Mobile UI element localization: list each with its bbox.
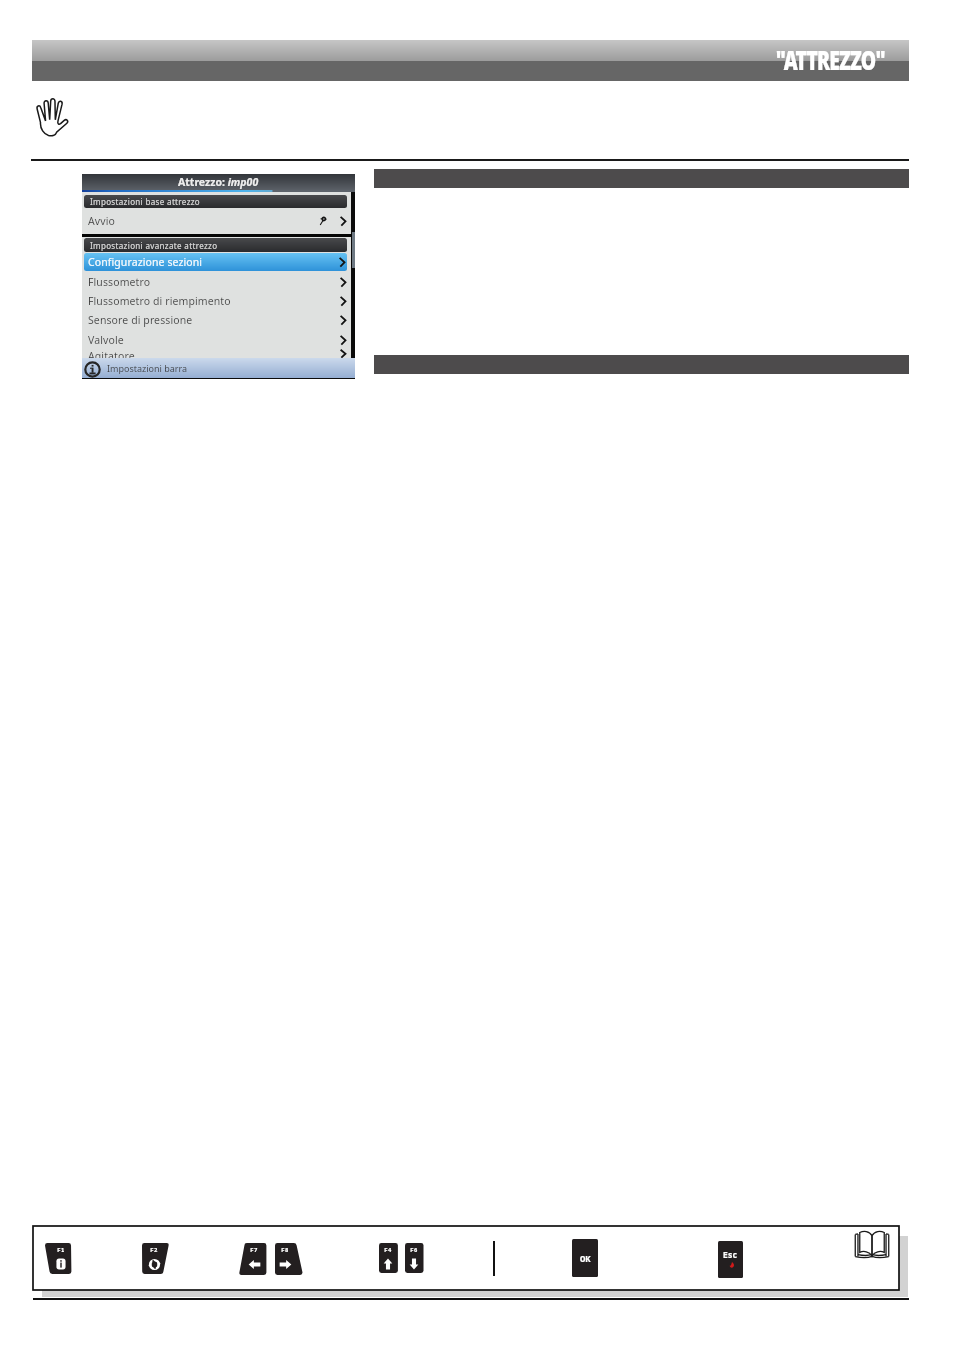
button[interactable]: F8 [275, 1243, 303, 1275]
button[interactable]: F1 [45, 1243, 71, 1274]
button[interactable]: Valvole [82, 330, 349, 349]
staticText: Impostazioni barra [107, 362, 188, 374]
staticText: F1 [57, 1246, 65, 1254]
button[interactable]: Flussometro [82, 272, 349, 291]
staticText: F7 [250, 1246, 258, 1254]
staticText: "ATTREZZO" [776, 42, 885, 77]
staticText: Flussometro [88, 275, 151, 289]
button[interactable]: Sensore di pressione [82, 310, 349, 330]
staticText: Impostazioni avanzate attrezzo [90, 240, 218, 251]
staticText: Flussometro di riempimento [88, 294, 231, 308]
staticText: F8 [281, 1246, 289, 1254]
staticText: F6 [410, 1246, 418, 1254]
staticText: Agitatore [88, 349, 135, 358]
button[interactable]: F6 [405, 1243, 424, 1273]
staticText: Impostazioni base attrezzo [90, 196, 201, 207]
staticText: F4 [384, 1246, 392, 1254]
staticText: OK [580, 1252, 591, 1264]
staticText: Attrezzo: [178, 175, 225, 189]
button[interactable]: Escape [718, 1241, 743, 1278]
staticText: Valvole [88, 333, 124, 347]
button[interactable]: Avvio [82, 208, 349, 234]
staticText: imp00 [225, 175, 259, 189]
staticText: Esc [723, 1249, 738, 1260]
button[interactable]: Flussometro di riempimento [82, 291, 349, 310]
button[interactable]: F7 [239, 1243, 266, 1275]
button[interactable]: Configurazione sezioni [84, 253, 347, 271]
button[interactable]: F4 [379, 1243, 398, 1273]
staticText: F2 [150, 1246, 158, 1254]
staticText: Avvio [88, 214, 115, 228]
button[interactable]: OK [572, 1239, 598, 1277]
button[interactable]: Manual [854, 1230, 890, 1258]
staticText: Configurazione sezioni [88, 255, 203, 269]
button[interactable]: F2 [142, 1243, 169, 1274]
staticText: Sensore di pressione [88, 313, 193, 327]
button[interactable]: Agitatore [82, 349, 349, 358]
button[interactable]: Impostazioni barra [82, 358, 355, 378]
